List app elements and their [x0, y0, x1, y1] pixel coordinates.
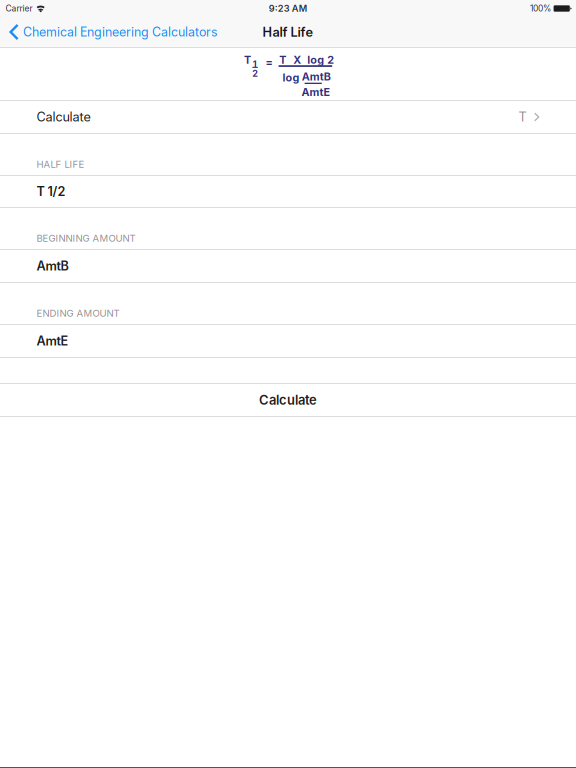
staticText: Calculate [36, 109, 90, 125]
staticText: Calculate [259, 392, 317, 408]
staticText: T [518, 109, 526, 125]
staticText: = [266, 56, 273, 69]
button[interactable]: Calculate [0, 384, 576, 416]
staticText: 1 [253, 59, 257, 70]
button[interactable]: Chemical Engineering Calculators [0, 19, 218, 45]
staticText: 100% [530, 3, 551, 14]
staticText: AmtB [302, 70, 331, 83]
staticText: X [293, 53, 301, 66]
staticText: T 1/2 [36, 184, 65, 199]
button[interactable]: AmtE [0, 325, 576, 357]
staticText: log 2 [307, 53, 334, 66]
staticText: AmtE [36, 333, 68, 349]
staticText: HALF LIFE [36, 158, 84, 170]
staticText: 9:23 AM [269, 3, 307, 14]
staticText: Half Life [262, 24, 313, 40]
staticText: log [283, 71, 300, 84]
button[interactable]: T 1/2 [0, 176, 576, 207]
staticText: T [279, 53, 286, 66]
staticText: Carrier [5, 3, 32, 14]
staticText: T [244, 53, 251, 66]
staticText: AmtE [301, 86, 330, 99]
staticText: AmtB [36, 258, 68, 274]
button[interactable]: Calculate [0, 101, 576, 133]
staticText: 2 [252, 68, 258, 79]
staticText: ENDING AMOUNT [36, 307, 119, 319]
button[interactable]: AmtB [0, 250, 576, 282]
staticText: Chemical Engineering Calculators [23, 24, 218, 39]
staticText: BEGINNING AMOUNT [36, 232, 135, 244]
